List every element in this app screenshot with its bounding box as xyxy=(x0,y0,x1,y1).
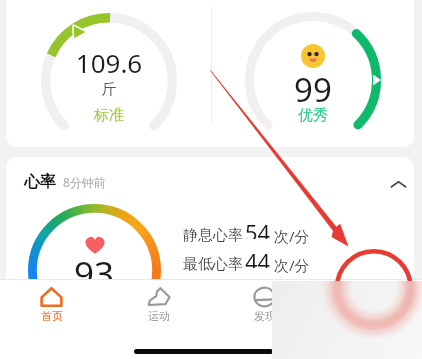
staticText: 99 xyxy=(245,67,381,112)
button[interactable]: 静息心率 xyxy=(180,225,320,247)
button[interactable]: 运动 xyxy=(106,281,210,329)
button[interactable]: 我的 xyxy=(319,281,422,329)
staticText: 运动 xyxy=(148,309,170,323)
staticText: 优秀 xyxy=(245,106,381,125)
staticText: 次/分 xyxy=(274,255,310,275)
staticText: 最低心率 xyxy=(183,255,243,274)
staticText: 心率 xyxy=(24,172,56,192)
button[interactable]: 首页 xyxy=(0,281,103,329)
staticText: 标准 xyxy=(41,106,177,125)
button[interactable]: 体重 109.6 斤 标准 xyxy=(41,13,177,149)
staticText: 发现 xyxy=(254,309,276,323)
staticText: 109.6 xyxy=(41,45,177,80)
staticText: 首页 xyxy=(41,309,63,323)
staticText: 93 xyxy=(28,250,160,298)
staticText: 8分钟前 xyxy=(63,174,106,190)
button[interactable]: 收起 xyxy=(381,167,414,201)
staticText: 我的 xyxy=(361,309,383,323)
staticText: 44 xyxy=(245,246,271,268)
button[interactable]: 发现 xyxy=(212,281,316,329)
staticText: 斤 xyxy=(41,80,177,99)
button[interactable]: 最低心率 xyxy=(180,254,320,276)
button[interactable]: 心率 xyxy=(24,171,106,193)
staticText: 次/分 xyxy=(274,226,310,246)
button[interactable]: 心率 93 xyxy=(28,204,161,337)
staticText: 54 xyxy=(245,217,271,239)
staticText: 静息心率 xyxy=(183,226,243,245)
button[interactable]: 健康评分 99 优秀 xyxy=(245,12,381,148)
